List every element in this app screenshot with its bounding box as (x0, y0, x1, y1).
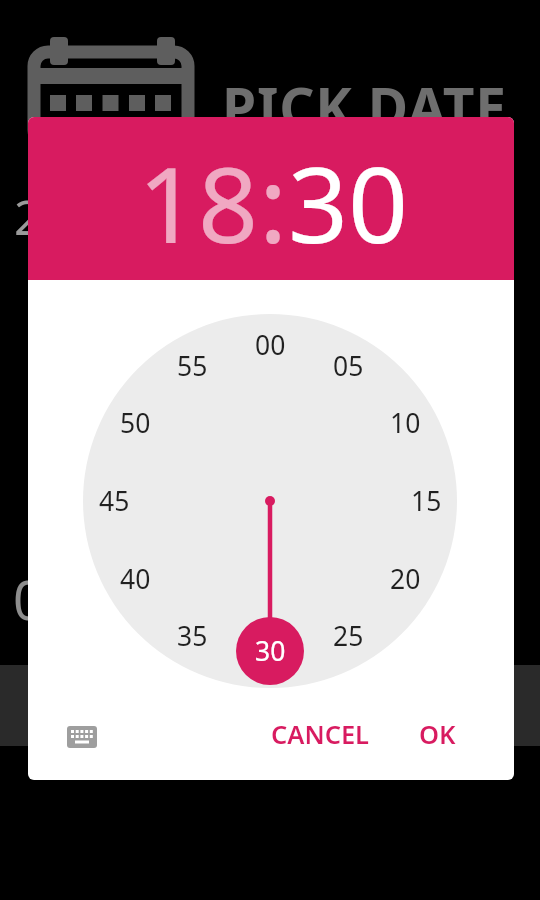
button[interactable]: 15 (396, 481, 456, 521)
staticText: 35 (177, 618, 208, 654)
button[interactable]: 05 (318, 346, 378, 386)
button[interactable]: 30 (240, 631, 300, 671)
staticText: 30 (288, 131, 409, 274)
button[interactable]: 45 (84, 481, 144, 521)
button[interactable]: 40 (105, 559, 165, 599)
button[interactable]: 20 (375, 559, 435, 599)
button[interactable] (55, 714, 109, 760)
staticText: 2 (14, 184, 42, 249)
staticText: CANCEL (271, 717, 370, 752)
staticText: 20 (390, 561, 421, 597)
button[interactable]: CANCEL (258, 710, 382, 758)
staticText: 25 (333, 618, 364, 654)
staticText: 00 (255, 327, 286, 363)
staticText: 15 (411, 483, 442, 519)
staticText: PICK DATE (222, 69, 507, 144)
staticText: 45 (99, 483, 130, 519)
staticText: 0 (13, 562, 44, 636)
staticText: OK (419, 717, 456, 752)
button[interactable]: 50 (105, 403, 165, 443)
staticText: 40 (120, 561, 151, 597)
staticText: 55 (177, 348, 208, 384)
button[interactable]: 30 (288, 131, 409, 274)
staticText: 50 (120, 405, 151, 441)
staticText: 10 (390, 405, 421, 441)
button[interactable]: 35 (162, 616, 222, 656)
button[interactable]: 00 (240, 325, 300, 365)
button[interactable]: OK (406, 710, 468, 758)
staticText: 30 (255, 633, 286, 669)
button[interactable]: 10 (375, 403, 435, 443)
button[interactable]: 55 (162, 346, 222, 386)
staticText: 05 (333, 348, 364, 384)
button[interactable]: 18 (138, 131, 259, 274)
button[interactable]: 25 (318, 616, 378, 656)
staticText: : (259, 131, 288, 274)
staticText: 18 (138, 131, 259, 274)
